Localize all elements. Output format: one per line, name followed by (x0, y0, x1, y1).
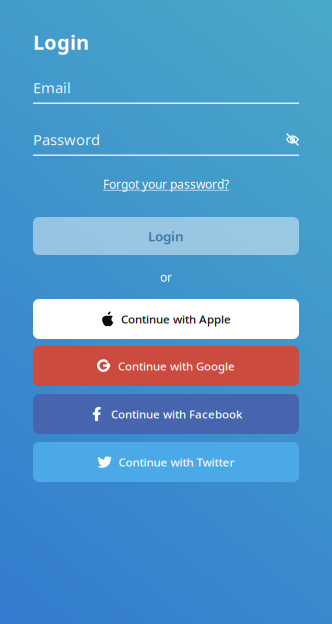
staticText: Forgot your password? (103, 176, 229, 192)
button[interactable]: Forgot your password? (103, 177, 229, 191)
button[interactable]: Show password (286, 133, 299, 145)
button[interactable]: Login (33, 217, 299, 255)
staticText: Login (33, 29, 89, 55)
staticText: Login (148, 227, 184, 245)
button[interactable]: Continue with Apple (33, 299, 299, 339)
button[interactable]: Continue with Facebook (33, 394, 299, 434)
staticText: Continue with Facebook (111, 406, 242, 422)
button[interactable]: Continue with Google (33, 346, 299, 386)
button[interactable]: Continue with Twitter (33, 442, 299, 482)
staticText: Continue with Google (118, 358, 235, 374)
staticText: Continue with Apple (121, 311, 231, 327)
staticText: or (160, 269, 172, 285)
staticText: Continue with Twitter (118, 454, 234, 470)
staticText: Email (33, 78, 71, 97)
staticText: Password (33, 130, 100, 149)
